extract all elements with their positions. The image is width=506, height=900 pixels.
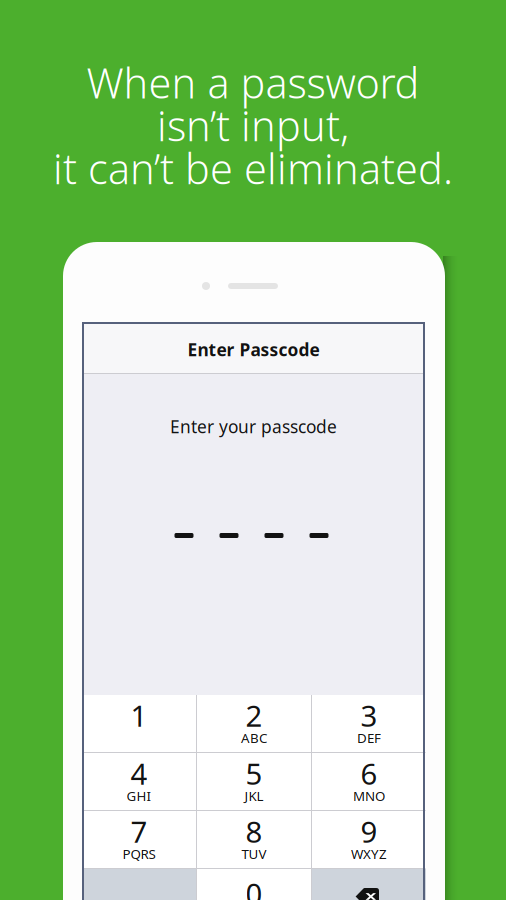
staticText: 0 xyxy=(245,874,262,900)
staticText: MNO xyxy=(353,787,385,805)
staticText: Enter your passcode xyxy=(170,415,337,438)
staticText: 2 xyxy=(245,696,262,735)
staticText: 4 xyxy=(130,754,147,793)
button[interactable]: 1 xyxy=(82,695,196,752)
staticText: 9 xyxy=(360,812,377,851)
staticText: 5 xyxy=(245,754,262,793)
staticText: DEF xyxy=(357,729,381,747)
staticText: Enter Passcode xyxy=(187,338,319,361)
button[interactable]: 0 xyxy=(197,869,311,900)
staticText: 8 xyxy=(245,812,262,851)
staticText: JKL xyxy=(244,787,263,805)
button[interactable]: 5 xyxy=(197,753,311,810)
staticText: it can’t be eliminated. xyxy=(53,141,453,196)
button[interactable]: 9 xyxy=(312,811,426,868)
button[interactable]: 3 xyxy=(312,695,426,752)
button[interactable]: Delete xyxy=(312,869,426,900)
button[interactable]: 6 xyxy=(312,753,426,810)
staticText: ABC xyxy=(241,729,267,747)
button[interactable]: Blank xyxy=(82,869,196,900)
staticText: GHI xyxy=(126,787,151,805)
button[interactable]: 4 xyxy=(82,753,196,810)
staticText: PQRS xyxy=(122,845,155,863)
staticText: TUV xyxy=(241,845,266,863)
staticText: When a password xyxy=(86,55,419,110)
button[interactable]: 2 xyxy=(197,695,311,752)
staticText: 7 xyxy=(130,812,147,851)
staticText: 3 xyxy=(360,696,377,735)
button[interactable]: 7 xyxy=(82,811,196,868)
button[interactable]: Enter Passcode xyxy=(82,322,425,373)
staticText: 6 xyxy=(360,754,377,793)
staticText: WXYZ xyxy=(351,845,387,863)
staticText: 1 xyxy=(130,696,147,735)
button[interactable]: 8 xyxy=(197,811,311,868)
staticText: isn’t input, xyxy=(157,98,349,153)
